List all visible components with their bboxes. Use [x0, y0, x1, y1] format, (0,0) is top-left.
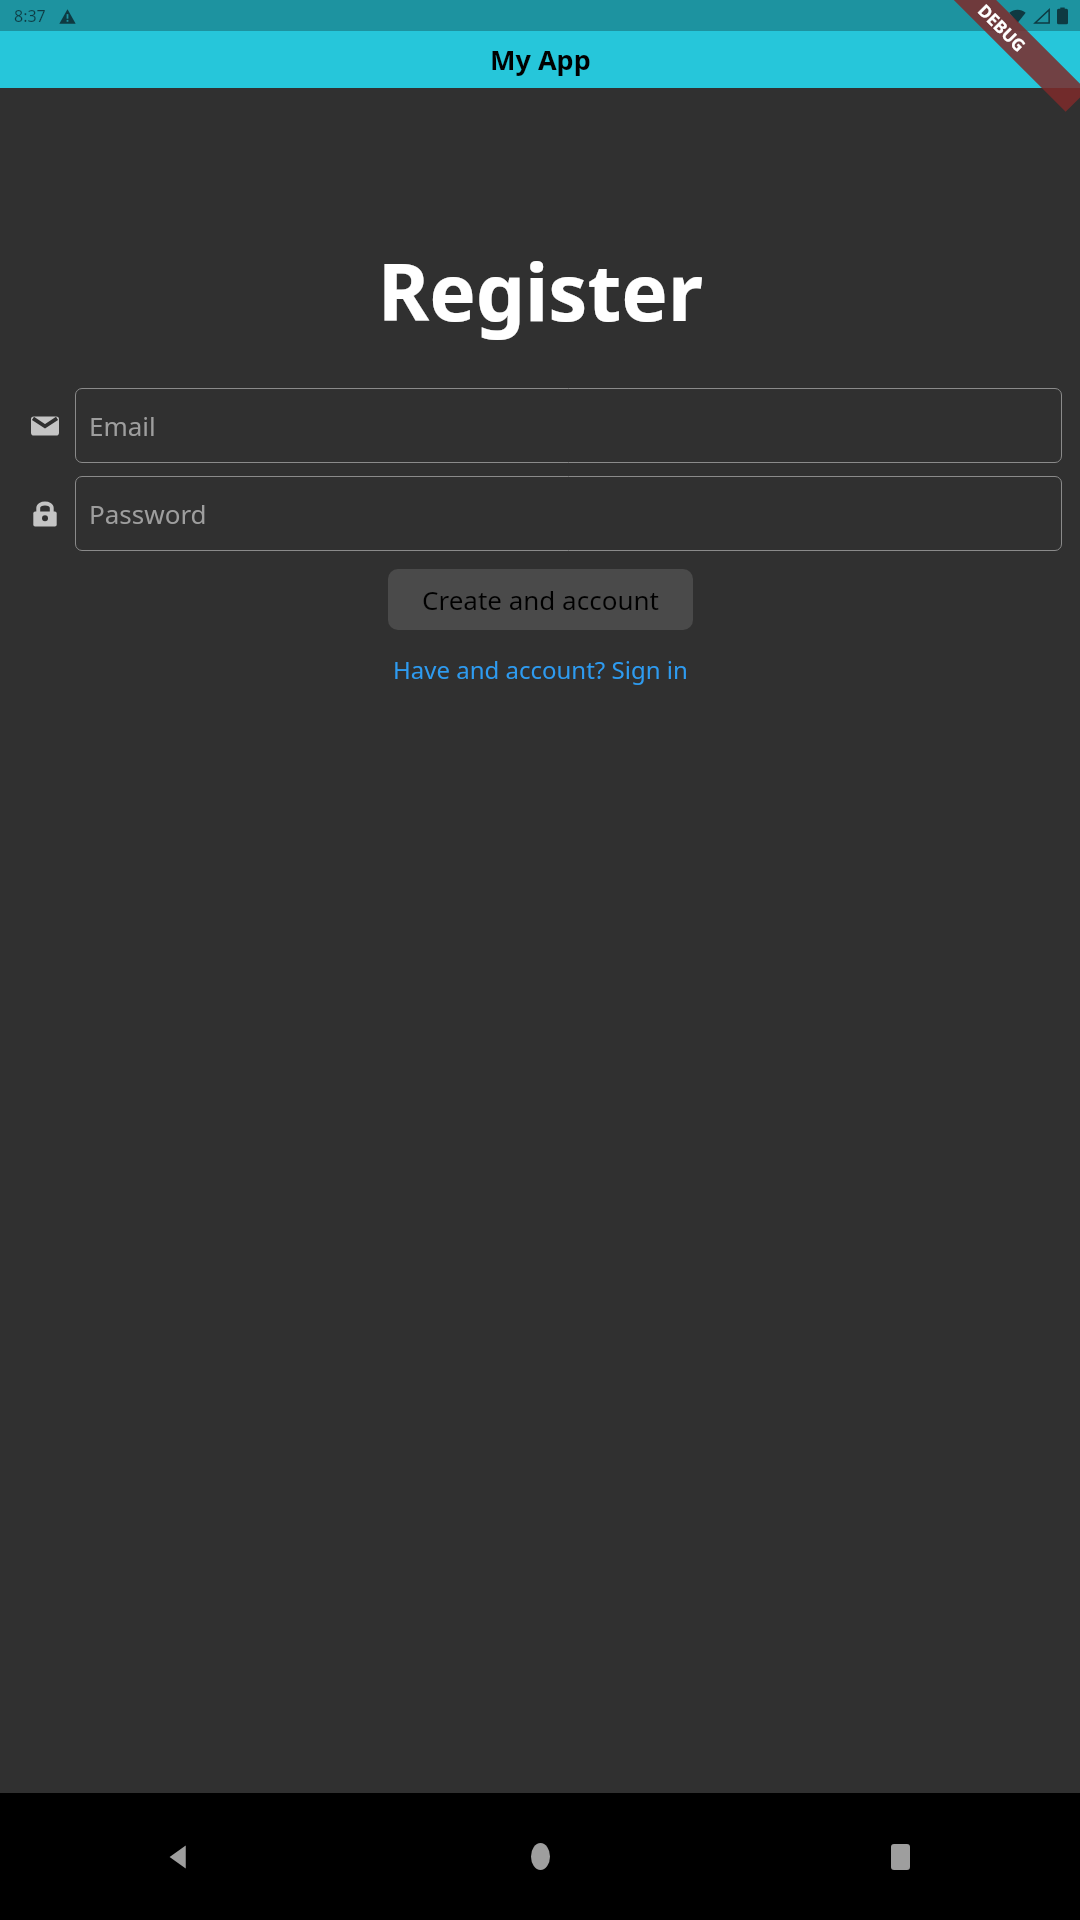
button[interactable]: Recent apps	[720, 1793, 1080, 1920]
button[interactable]: Password	[75, 476, 1062, 551]
staticText: Create and account	[422, 582, 659, 617]
other: Email	[31, 412, 59, 440]
button[interactable]: Home	[360, 1793, 720, 1920]
staticText: 8:37	[14, 5, 46, 27]
staticText: Password	[89, 496, 207, 531]
button[interactable]: Email	[75, 388, 1062, 463]
staticText: Register	[378, 238, 703, 344]
button[interactable]: Have and account? Sign in	[381, 647, 700, 692]
other: Password	[30, 499, 60, 529]
button[interactable]: Create and account	[388, 569, 693, 630]
staticText: DEBUG	[973, 0, 1031, 57]
staticText: Have and account? Sign in	[393, 653, 688, 686]
staticText: My App	[490, 41, 591, 78]
button[interactable]: Back	[0, 1793, 360, 1920]
staticText: Email	[89, 408, 156, 443]
